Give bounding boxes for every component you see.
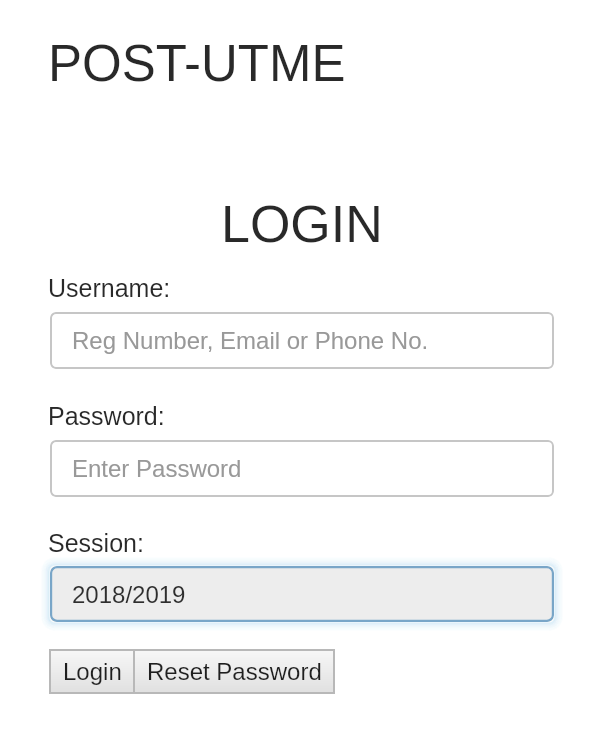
staticText: Login (63, 658, 122, 685)
staticText: Reset Password (147, 658, 322, 685)
button[interactable]: Reset Password (134, 650, 334, 693)
button[interactable]: Session select (50, 566, 554, 622)
staticText: Session: (48, 529, 144, 557)
button[interactable]: Login (50, 650, 134, 693)
staticText: LOGIN (221, 195, 383, 253)
staticText: Enter Password (72, 455, 242, 482)
staticText: Username: (48, 274, 171, 302)
staticText: Reg Number, Email or Phone No. (72, 327, 429, 354)
button[interactable]: Password input (50, 440, 554, 497)
staticText: POST-UTME (48, 35, 346, 92)
staticText: 2018/2019 (72, 581, 186, 608)
staticText: Password: (48, 402, 165, 430)
button[interactable]: Username input (50, 312, 554, 369)
